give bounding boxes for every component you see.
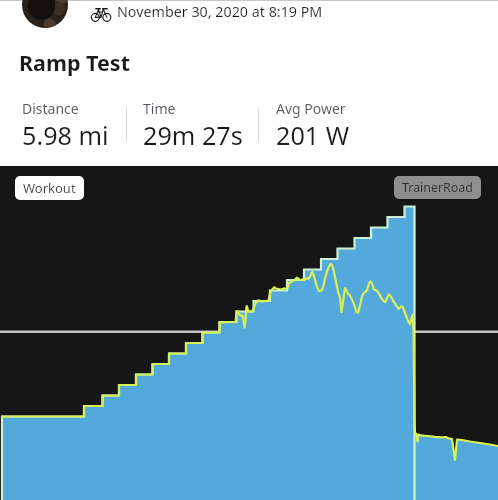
staticText: Avg Power xyxy=(276,99,346,118)
staticText: Time xyxy=(143,99,176,118)
staticText: November 30, 2020 at 8:19 PM xyxy=(117,2,323,21)
staticText: 29m 27s xyxy=(143,118,243,152)
staticText: Workout xyxy=(23,179,76,197)
staticText: 201 W xyxy=(276,118,350,152)
button[interactable]: TrainerRoad xyxy=(394,176,481,199)
staticText: Distance xyxy=(22,99,79,118)
other: Profile photo xyxy=(22,0,68,28)
button[interactable]: Workout xyxy=(15,176,84,200)
staticText: Ramp Test xyxy=(19,48,130,77)
staticText: TrainerRoad xyxy=(402,179,473,196)
staticText: 5.98 mi xyxy=(22,118,109,152)
